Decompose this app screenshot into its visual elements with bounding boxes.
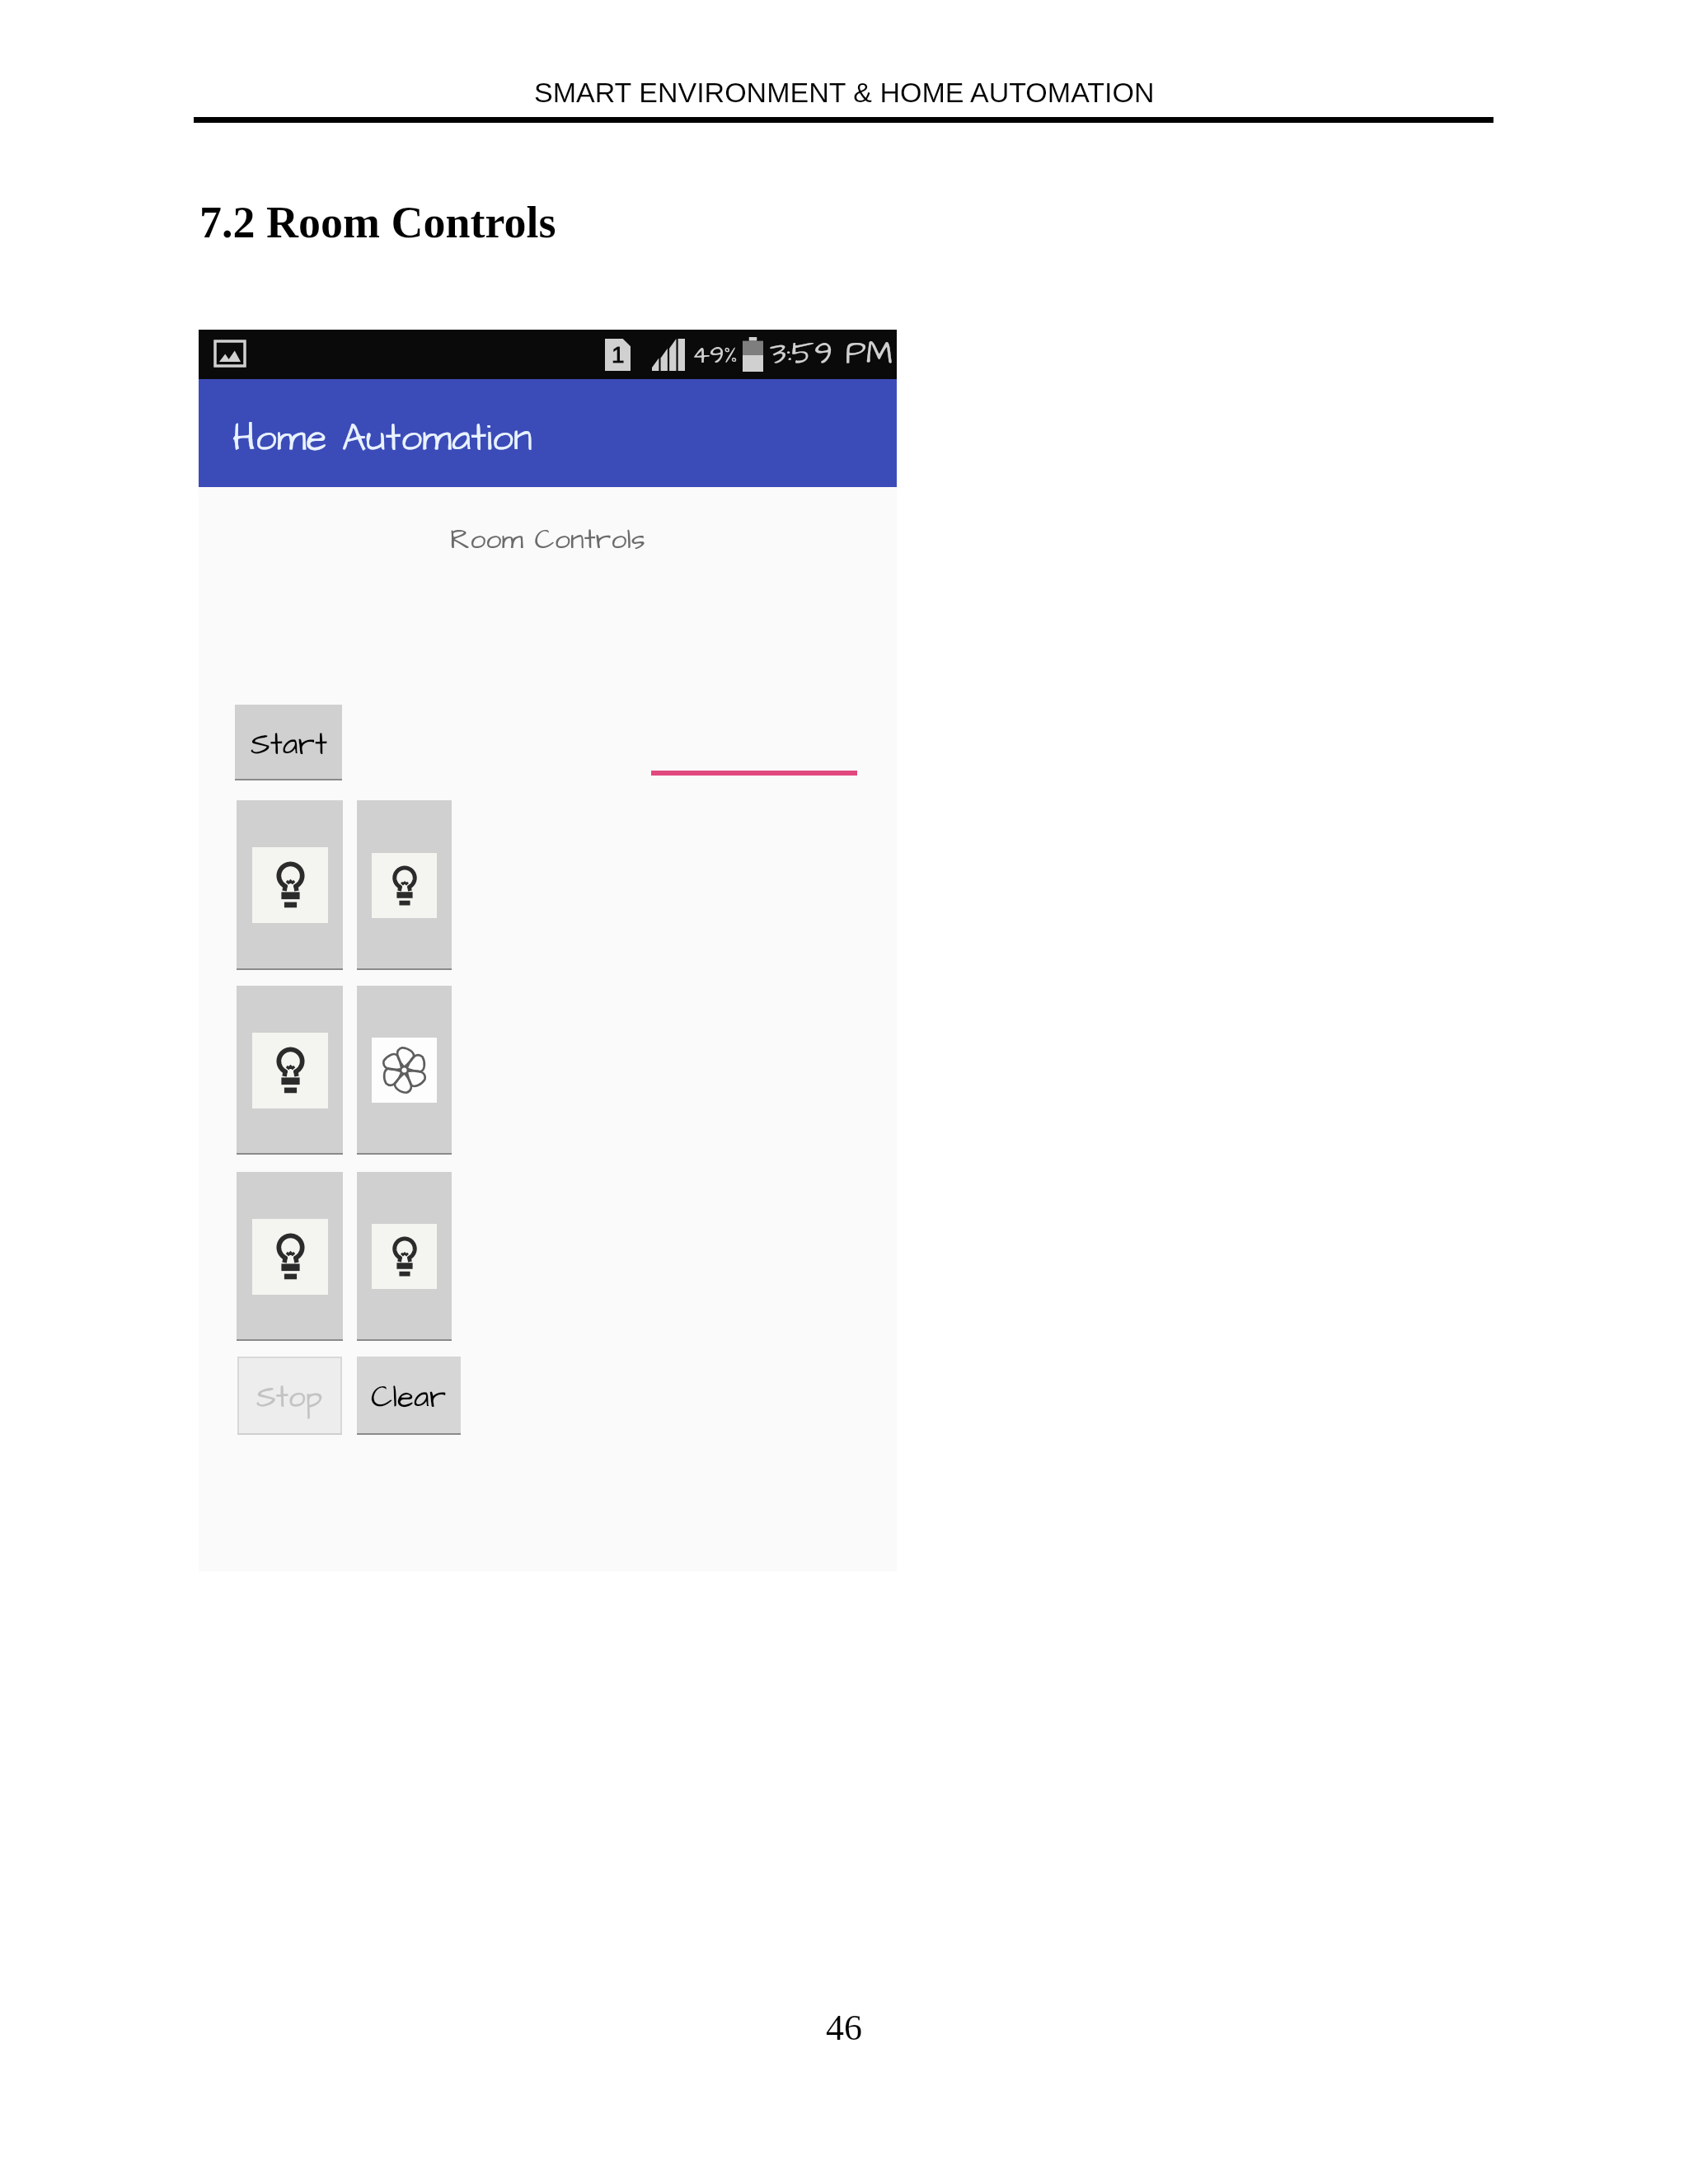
button[interactable]: Light toggle — [237, 800, 343, 970]
button[interactable]: Stop — [237, 1357, 342, 1435]
staticText: Start — [251, 724, 327, 766]
staticText: SMART ENVIRONMENT & HOME AUTOMATION — [534, 77, 1155, 108]
staticText: Home Automation — [232, 413, 532, 466]
button[interactable]: Light toggle — [357, 800, 452, 970]
staticText: 1 — [612, 342, 625, 368]
button[interactable]: Light toggle — [357, 1172, 452, 1341]
staticText: Clear — [371, 1377, 447, 1419]
staticText: 7.2 Room Controls — [199, 198, 556, 247]
button[interactable]: Light toggle — [237, 1172, 343, 1341]
staticText: 46 — [826, 2008, 862, 2048]
staticText: 3:59 PM — [770, 332, 893, 377]
staticText: Room Controls — [450, 520, 645, 559]
button[interactable]: Clear — [357, 1357, 461, 1435]
button[interactable]: Light toggle — [237, 986, 343, 1155]
button[interactable]: Fan toggle — [357, 986, 452, 1155]
button[interactable]: Start — [235, 705, 342, 780]
staticText: 49% — [692, 337, 738, 373]
staticText: Stop — [256, 1377, 323, 1419]
